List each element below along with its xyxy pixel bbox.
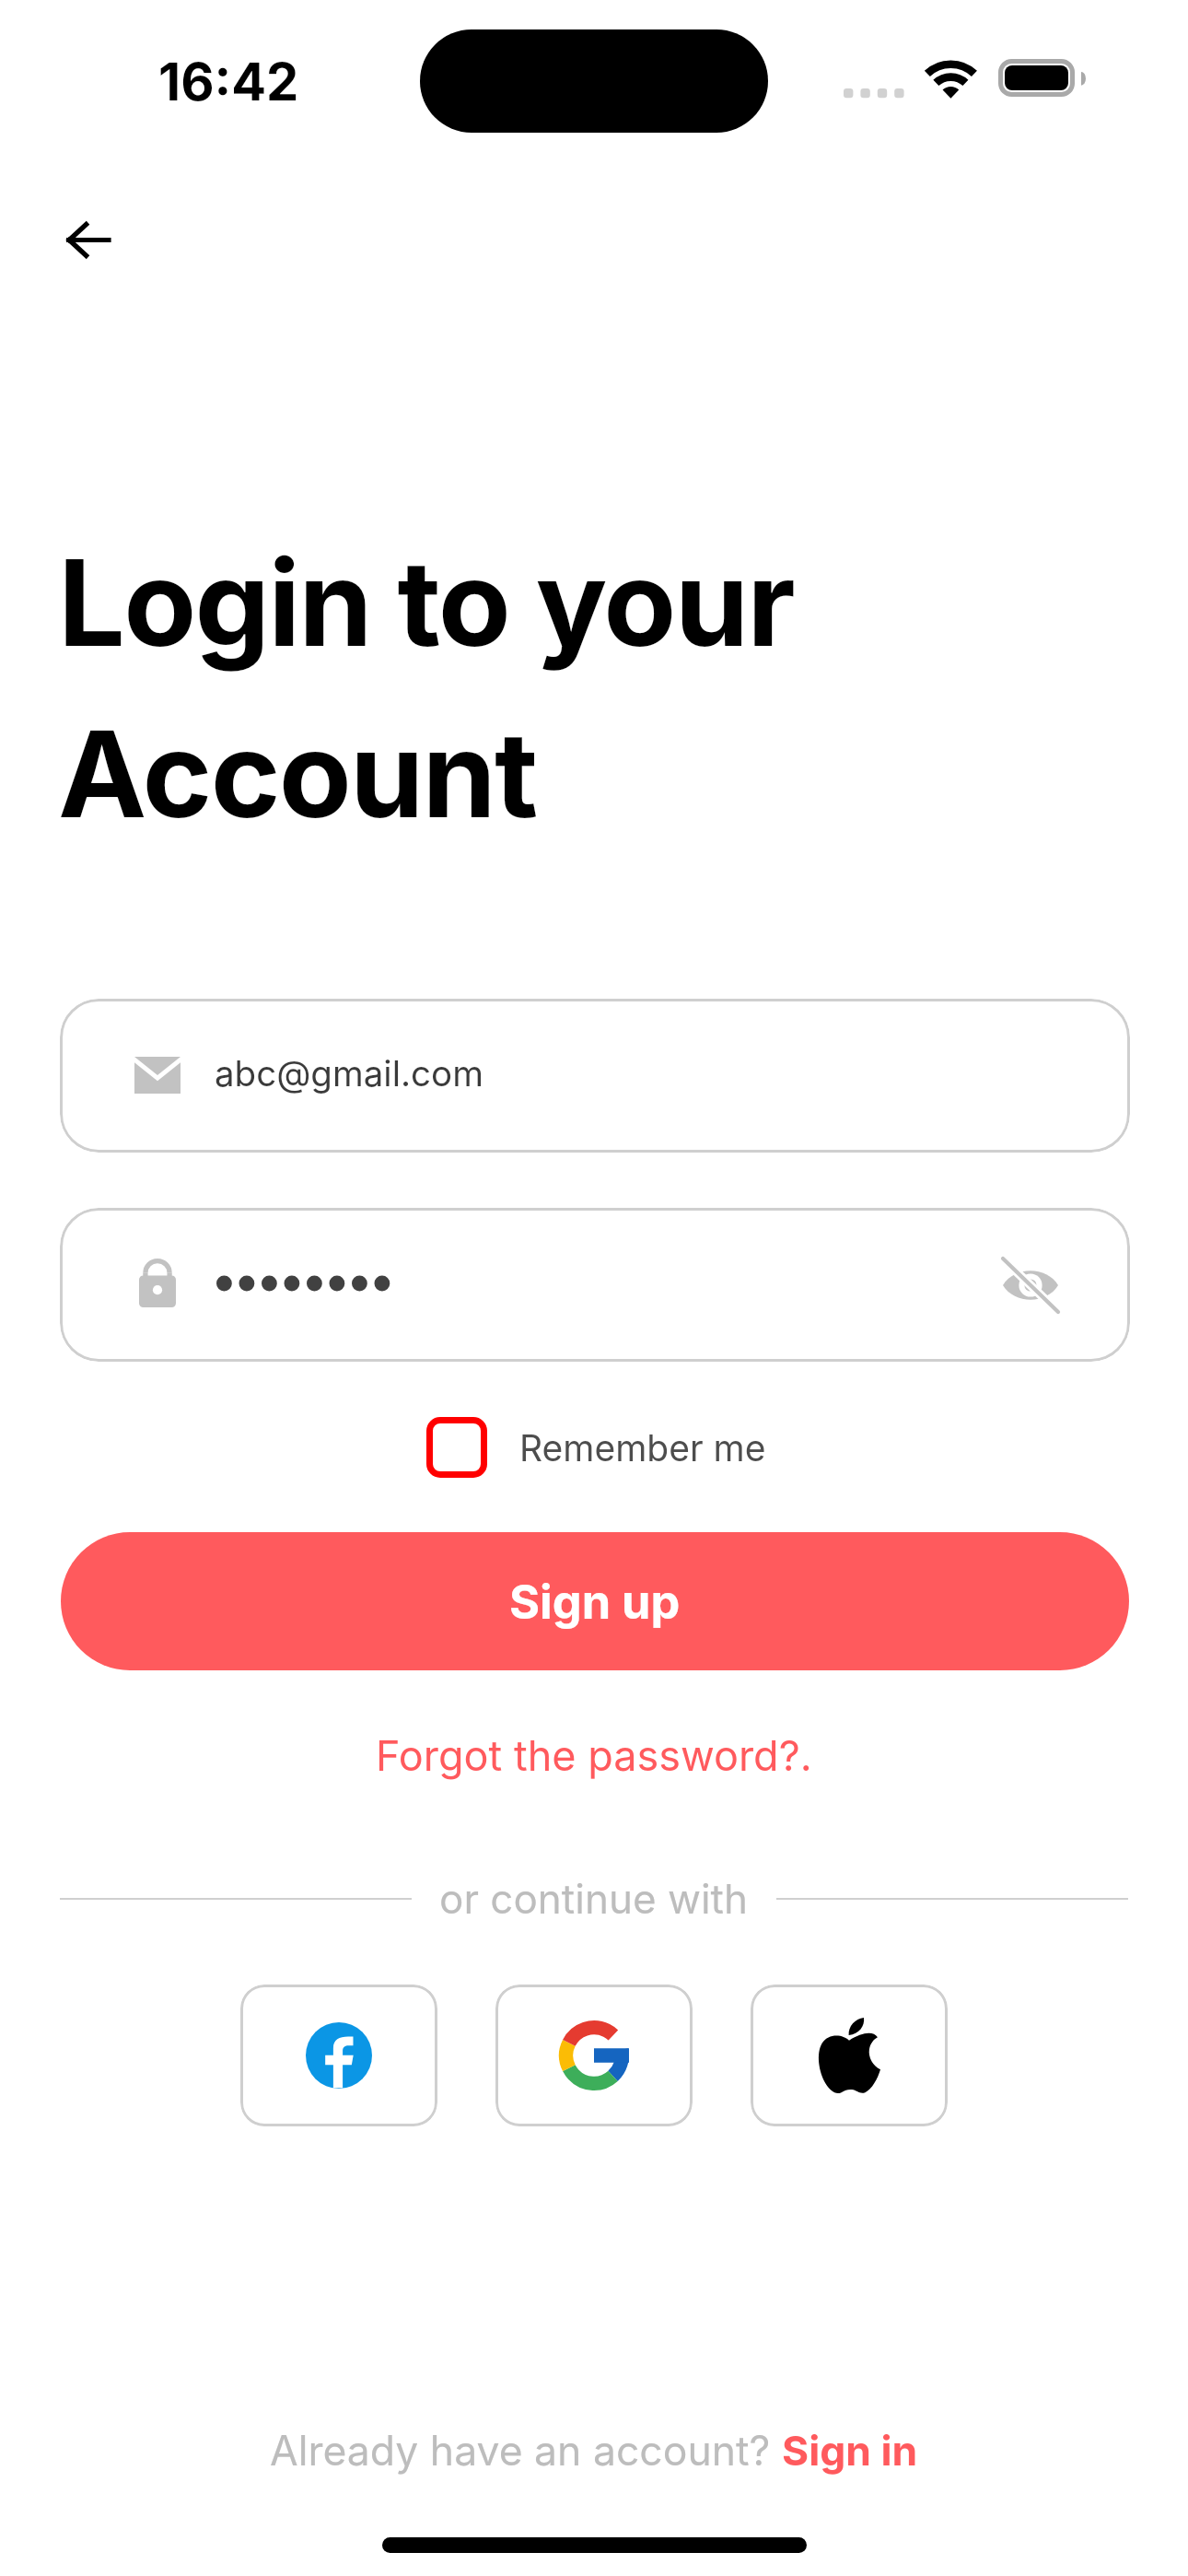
button[interactable]: abc@gmail.com xyxy=(60,999,1130,1153)
staticText: 16:42 xyxy=(158,51,299,113)
staticText: Login to your xyxy=(58,531,794,674)
button[interactable]: Remember me xyxy=(426,1417,766,1478)
staticText: Sign up xyxy=(509,1574,681,1630)
button[interactable]: Show password xyxy=(975,1208,1086,1362)
button[interactable]: Back xyxy=(37,189,138,290)
staticText: Remember me xyxy=(519,1426,766,1469)
button[interactable]: Show password xyxy=(60,1208,1130,1362)
button[interactable]: Sign up xyxy=(61,1532,1129,1670)
staticText: Account xyxy=(58,702,537,846)
button[interactable]: Sign in xyxy=(782,2426,918,2476)
staticText: Sign in xyxy=(782,2426,918,2476)
staticText: or continue with xyxy=(439,1874,749,1923)
button[interactable]: Continue with Google xyxy=(495,1985,693,2126)
staticText: abc@gmail.com xyxy=(215,1052,483,1095)
staticText: Forgot the password?. xyxy=(376,1730,812,1780)
button[interactable]: Continue with Facebook xyxy=(240,1985,437,2126)
button[interactable]: Forgot the password?. xyxy=(361,1723,827,1787)
button[interactable]: Continue with Apple xyxy=(751,1985,948,2126)
staticText: Already have an account? xyxy=(270,2426,782,2476)
